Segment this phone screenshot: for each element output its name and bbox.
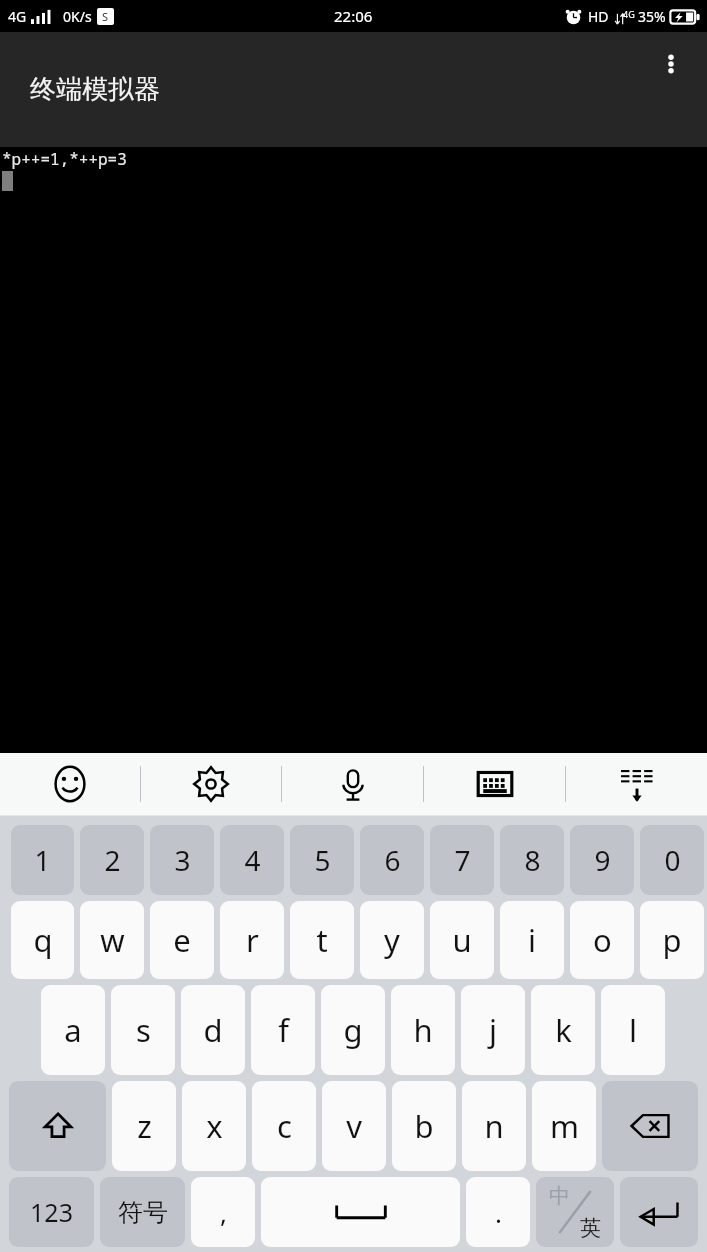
staticText: 5 [314, 841, 331, 879]
button[interactable]: f [251, 985, 315, 1075]
button[interactable]: u [430, 901, 494, 979]
staticText: 2 [104, 841, 121, 879]
staticText: s [136, 1009, 151, 1051]
staticText: g [343, 1009, 363, 1051]
button[interactable]: Shift [9, 1081, 106, 1171]
staticText: q [33, 919, 53, 961]
button[interactable]: 3 [150, 825, 214, 895]
button[interactable]: m [532, 1081, 596, 1171]
staticText: a [64, 1009, 82, 1051]
button[interactable]: t [290, 901, 354, 979]
staticText: l [629, 1009, 637, 1051]
staticText: 22:06 [334, 6, 373, 26]
staticText: 7 [454, 841, 471, 879]
button[interactable]: j [461, 985, 525, 1075]
button[interactable]: x [182, 1081, 246, 1171]
button[interactable]: . [466, 1177, 530, 1247]
staticText: p [662, 919, 682, 961]
staticText: 中 [549, 1183, 570, 1209]
staticText: 4G [623, 8, 635, 20]
button[interactable]: Hide keyboard [566, 753, 707, 815]
staticText: c [277, 1105, 292, 1147]
button[interactable]: Backspace [602, 1081, 698, 1171]
staticText: 8 [524, 841, 541, 879]
staticText: b [414, 1105, 434, 1147]
button[interactable]: Space [261, 1177, 460, 1247]
button[interactable]: v [322, 1081, 386, 1171]
staticText: 符号 [118, 1197, 168, 1228]
button[interactable]: r [220, 901, 284, 979]
staticText: 123 [30, 1195, 73, 1229]
staticText: S [102, 9, 109, 24]
staticText: , [220, 1195, 227, 1230]
button[interactable]: c [252, 1081, 316, 1171]
button[interactable]: z [112, 1081, 176, 1171]
staticText: f [278, 1009, 289, 1051]
staticText: 4G [8, 7, 27, 26]
button[interactable]: , [191, 1177, 255, 1247]
staticText: 0K/s [63, 7, 92, 26]
staticText: t [316, 919, 328, 961]
button[interactable]: 6 [360, 825, 424, 895]
staticText: 35% [638, 7, 666, 26]
staticText: o [593, 919, 612, 961]
staticText: n [484, 1105, 504, 1147]
staticText: i [528, 919, 536, 961]
staticText: r [246, 919, 259, 961]
button[interactable]: More options [643, 36, 699, 92]
button[interactable]: Enter [620, 1177, 698, 1247]
button[interactable]: Keyboard layout [424, 753, 565, 815]
staticText: 0 [664, 841, 681, 879]
staticText: 终端模拟器 [30, 73, 160, 106]
button[interactable]: l [601, 985, 665, 1075]
button[interactable]: q [11, 901, 74, 979]
staticText: 1 [34, 841, 51, 879]
staticText: 6 [384, 841, 401, 879]
button[interactable]: i [500, 901, 564, 979]
button[interactable]: 8 [500, 825, 564, 895]
staticText: w [100, 919, 125, 961]
staticText: y [384, 919, 400, 961]
staticText: j [489, 1009, 497, 1051]
staticText: 4 [244, 841, 261, 879]
staticText: v [346, 1105, 362, 1147]
button[interactable]: g [321, 985, 385, 1075]
button[interactable]: w [80, 901, 144, 979]
button[interactable]: Chinese English toggle [536, 1177, 614, 1247]
button[interactable]: o [570, 901, 634, 979]
button[interactable]: 5 [290, 825, 354, 895]
button[interactable]: Emoji [0, 753, 140, 815]
button[interactable]: a [41, 985, 105, 1075]
button[interactable]: 9 [570, 825, 634, 895]
button[interactable]: Voice input [282, 753, 423, 815]
button[interactable]: 123 [9, 1177, 94, 1247]
staticText: 9 [594, 841, 611, 879]
staticText: HD [588, 7, 609, 26]
staticText: *p++=1,*++p=3 [2, 148, 127, 170]
button[interactable]: 1 [11, 825, 74, 895]
staticText: 英 [580, 1215, 601, 1241]
button[interactable]: 符号 [100, 1177, 185, 1247]
button[interactable]: n [462, 1081, 526, 1171]
staticText: d [203, 1009, 223, 1051]
button[interactable]: p [640, 901, 704, 979]
button[interactable]: h [391, 985, 455, 1075]
button[interactable]: 7 [430, 825, 494, 895]
staticText: e [173, 919, 191, 961]
staticText: h [413, 1009, 433, 1051]
button[interactable]: b [392, 1081, 456, 1171]
button[interactable]: 4 [220, 825, 284, 895]
staticText: m [550, 1105, 579, 1147]
staticText: u [452, 919, 472, 961]
button[interactable]: d [181, 985, 245, 1075]
button[interactable]: Settings [141, 753, 281, 815]
staticText: . [495, 1195, 502, 1230]
button[interactable]: 2 [80, 825, 144, 895]
staticText: k [555, 1009, 572, 1051]
staticText: x [206, 1105, 223, 1147]
button[interactable]: s [111, 985, 175, 1075]
button[interactable]: y [360, 901, 424, 979]
button[interactable]: 0 [640, 825, 704, 895]
button[interactable]: k [531, 985, 595, 1075]
button[interactable]: e [150, 901, 214, 979]
